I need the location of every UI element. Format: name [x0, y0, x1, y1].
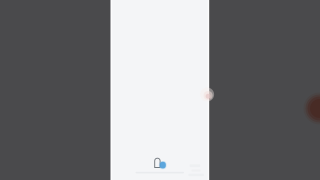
button[interactable]: Privacy [154, 157, 168, 170]
